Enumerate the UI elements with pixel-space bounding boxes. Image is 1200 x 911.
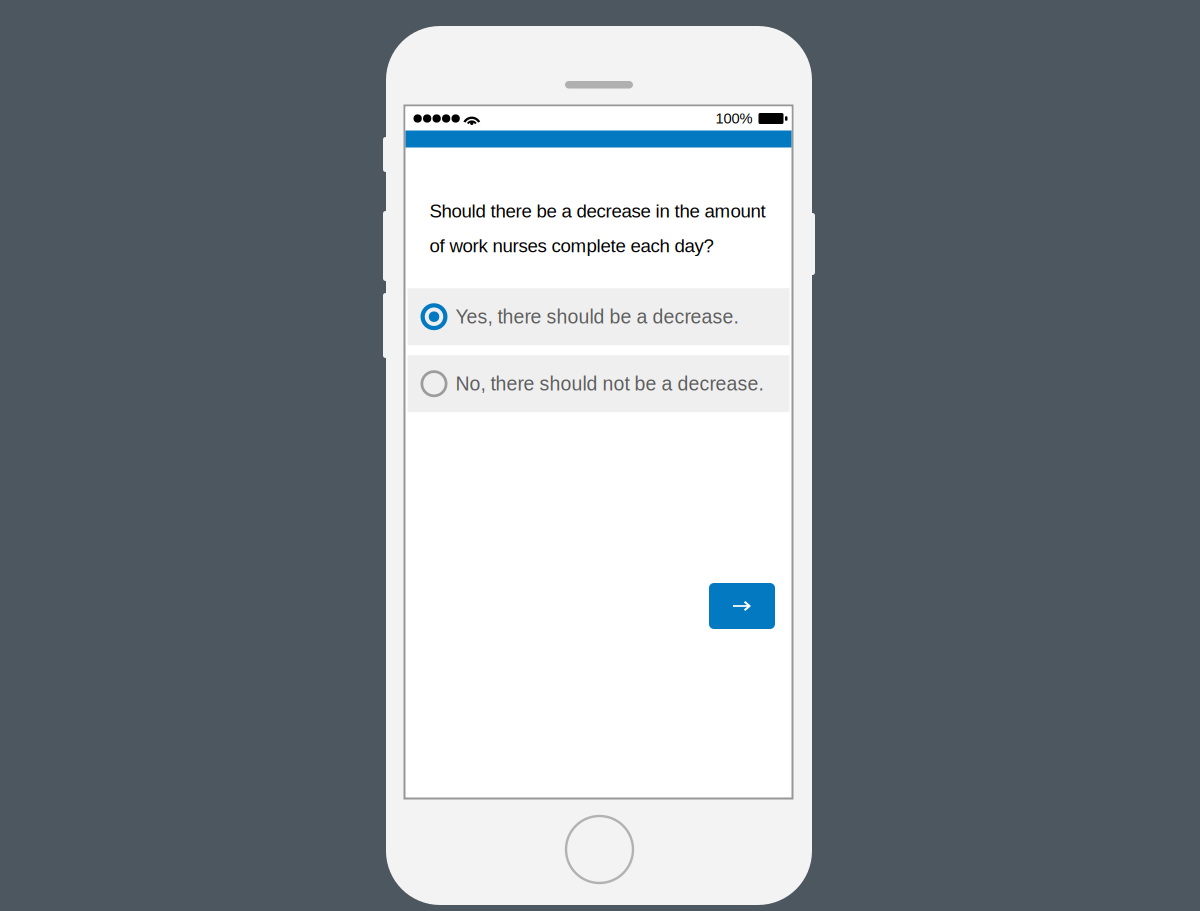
button[interactable]: No, there should not be a decrease.: [407, 355, 789, 412]
staticText: of work nurses complete each day?: [429, 235, 713, 256]
staticText: 100%: [715, 110, 752, 127]
staticText: Should there be a decrease in the amount: [429, 200, 765, 221]
button[interactable]: Next question: [709, 583, 775, 629]
staticText: No, there should not be a decrease.: [455, 373, 763, 394]
button[interactable]: Yes, there should be a decrease.: [407, 288, 789, 345]
staticText: Yes, there should be a decrease.: [455, 306, 738, 327]
